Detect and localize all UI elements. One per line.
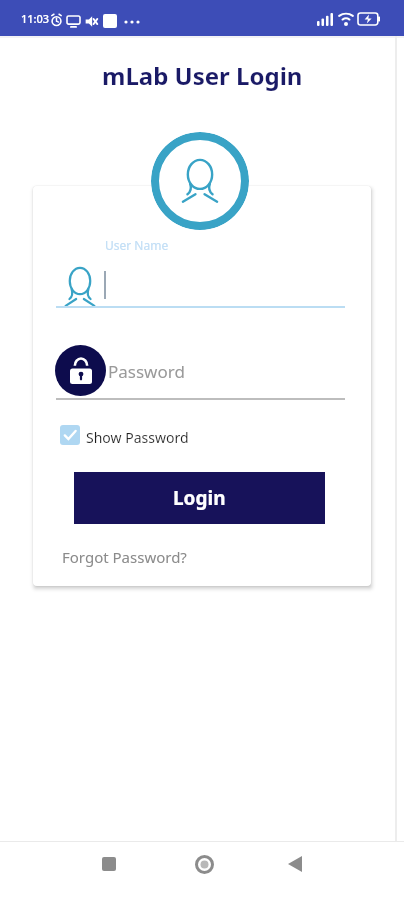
staticText: 11:03 [21,11,50,26]
button[interactable] [282,851,308,877]
staticText: mLab User Login [102,59,303,92]
staticText: Login [173,485,226,511]
button[interactable] [191,851,217,877]
staticText: Show Password [86,428,189,447]
button[interactable] [55,345,106,396]
staticText: User Name [105,237,169,253]
button[interactable]: Login [74,472,325,524]
staticText: Password [108,360,185,383]
button[interactable]: Show Password [60,425,220,447]
button[interactable] [96,851,122,877]
button[interactable]: Forgot Password? [62,547,187,567]
